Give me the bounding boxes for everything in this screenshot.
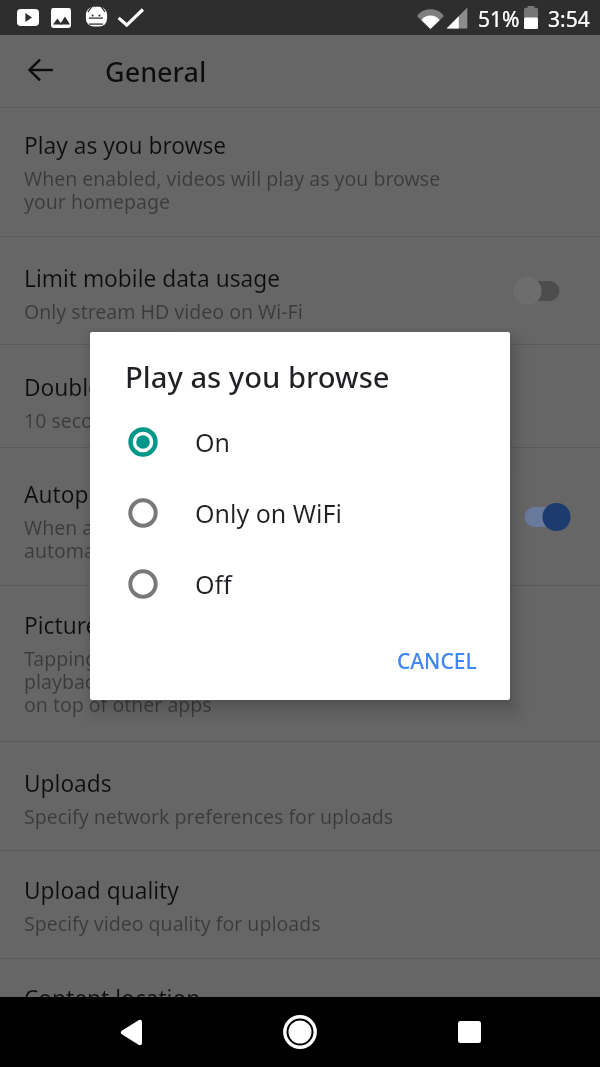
staticText: Only on WiFi <box>195 496 342 530</box>
button[interactable]: Switch off <box>510 269 574 313</box>
staticText: When enabled, videos will play as you br… <box>24 165 441 215</box>
staticText: Autoplay next video <box>24 479 235 510</box>
staticText: Only stream HD video on Wi-Fi <box>24 298 303 325</box>
staticText: 51% <box>478 5 520 34</box>
button[interactable]: Switch on <box>510 495 574 539</box>
button[interactable]: Double tap to seek <box>0 345 600 448</box>
staticText: Specify network preferences for uploads <box>24 803 394 830</box>
staticText: When autoplay is enabled, a suggested vi… <box>24 514 473 564</box>
button[interactable]: Uploads <box>0 742 600 851</box>
staticText: General <box>105 53 207 90</box>
button[interactable]: Content location <box>0 959 600 1067</box>
staticText: Limit mobile data usage <box>24 263 281 294</box>
staticText: Double tap to seek <box>24 372 224 403</box>
button[interactable]: Limit mobile data usage <box>0 237 600 345</box>
staticText: Specify your content location <box>24 1018 290 1045</box>
button[interactable]: Back <box>107 1008 155 1056</box>
button[interactable]: Picture-in-picture <box>0 586 600 742</box>
button[interactable]: Only on WiFi <box>90 477 510 548</box>
staticText: Uploads <box>24 768 112 799</box>
staticText: On <box>195 425 230 459</box>
button[interactable]: Recent apps <box>445 1008 493 1056</box>
staticText: 10 seconds <box>24 407 127 434</box>
staticText: Play as you browse <box>24 130 227 161</box>
button[interactable]: Back <box>17 46 65 94</box>
staticText: 3:54 <box>548 5 590 34</box>
staticText: Upload quality <box>24 875 179 906</box>
staticText: Play as you browse <box>125 357 390 397</box>
button[interactable]: Play as you browse <box>0 108 600 237</box>
staticText: Content location <box>24 983 201 1014</box>
staticText: Tapping the home button will continue vi… <box>24 645 434 718</box>
button[interactable]: Autoplay next video <box>0 448 600 586</box>
button[interactable]: On <box>90 406 510 477</box>
button[interactable]: Home <box>276 1008 324 1056</box>
staticText: Off <box>195 567 232 601</box>
button[interactable]: Off <box>90 548 510 619</box>
staticText: CANCEL <box>397 647 477 676</box>
button[interactable]: CANCEL <box>385 637 489 686</box>
staticText: Specify video quality for uploads <box>24 910 321 937</box>
staticText: Picture-in-picture <box>24 610 208 641</box>
button[interactable]: Upload quality <box>0 851 600 959</box>
